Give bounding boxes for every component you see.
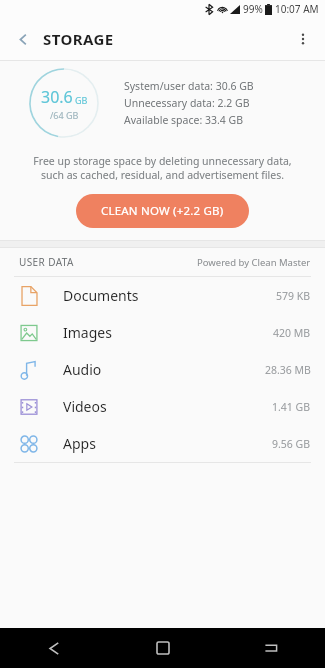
button[interactable]: Back	[8, 24, 38, 54]
staticText: CLEAN NOW (+2.2 GB)	[101, 203, 224, 219]
staticText: 9.56 GB	[272, 437, 311, 451]
button[interactable]: Apps	[0, 425, 325, 462]
staticText: System/user data: 30.6 GB	[124, 79, 254, 93]
staticText: /64 GB	[50, 109, 79, 121]
staticText: Documents	[63, 286, 139, 305]
staticText: Unnecessary data: 2.2 GB	[124, 96, 250, 110]
staticText: Apps	[63, 434, 96, 453]
staticText: STORAGE	[43, 29, 114, 49]
staticText: 579 KB	[276, 289, 311, 303]
button[interactable]: CLEAN NOW (+2.2 GB)	[76, 194, 249, 228]
staticText: 30.6	[41, 86, 73, 108]
staticText: Images	[63, 323, 112, 342]
button[interactable]: Videos	[0, 388, 325, 425]
button[interactable]: Images	[0, 314, 325, 351]
staticText: 420 MB	[273, 326, 311, 340]
staticText: Videos	[63, 397, 107, 416]
button[interactable]: More options	[287, 23, 319, 55]
staticText: USER DATA	[19, 255, 74, 269]
button[interactable]: Audio	[0, 351, 325, 388]
button[interactable]: Documents	[0, 277, 325, 314]
staticText: 10:07 AM	[275, 2, 319, 16]
staticText: GB	[75, 94, 88, 106]
staticText: Audio	[63, 360, 102, 379]
staticText: 1.41 GB	[272, 400, 311, 414]
staticText: Free up storage space by deleting unnece…	[24, 154, 301, 182]
staticText: Powered by Clean Master	[197, 256, 311, 269]
button[interactable]: Back	[32, 628, 76, 668]
staticText: 28.36 MB	[265, 363, 311, 377]
staticText: 99%	[243, 2, 263, 16]
button[interactable]: Recent apps	[249, 628, 293, 668]
button[interactable]: Home	[141, 628, 185, 668]
staticText: Available space: 33.4 GB	[124, 113, 243, 127]
